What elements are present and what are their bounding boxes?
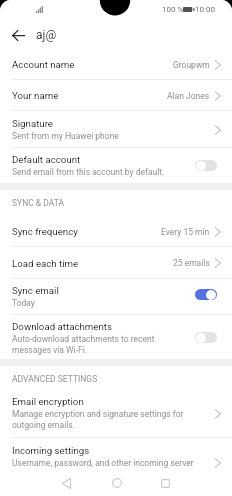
staticText: Email encryption <box>12 396 84 407</box>
staticText: Sync frequency <box>12 226 78 237</box>
staticText: Today <box>12 298 35 308</box>
button[interactable]: Sync frequency <box>0 216 232 247</box>
button[interactable]: Off <box>195 160 217 171</box>
button[interactable]: Load each time <box>0 247 232 279</box>
button[interactable]: Recent apps <box>153 470 178 496</box>
button[interactable]: Account name <box>0 49 232 80</box>
staticText: ADVANCED SETTINGS <box>12 374 98 384</box>
button[interactable]: Download attachments <box>0 315 232 359</box>
staticText: Auto-download attachments to recent mess… <box>12 334 162 355</box>
button[interactable]: On <box>195 289 217 300</box>
staticText: Username, password, and other incoming s… <box>12 458 197 479</box>
button[interactable]: Home <box>104 470 129 496</box>
staticText: Account name <box>12 59 75 70</box>
button[interactable]: Email encryption <box>0 389 232 438</box>
staticText: Default account <box>12 154 81 165</box>
staticText: Signature <box>12 118 54 129</box>
button[interactable]: Incoming settings <box>0 438 232 487</box>
staticText: SYNC & DATA <box>12 198 65 208</box>
staticText: aj@ <box>36 28 57 42</box>
staticText: 10:00 <box>195 5 215 14</box>
staticText: Alan Jones <box>167 91 210 101</box>
staticText: Send email from this account by default. <box>12 167 165 177</box>
button[interactable]: Default account <box>0 148 232 183</box>
staticText: 100 % <box>162 5 184 14</box>
staticText: Your name <box>12 90 59 101</box>
button[interactable]: Signature <box>0 111 232 148</box>
staticText: Incoming settings <box>12 445 90 456</box>
button[interactable]: Sync email <box>0 279 232 315</box>
button[interactable]: Back <box>54 470 79 496</box>
button[interactable]: Your name <box>0 80 232 111</box>
staticText: Sync email <box>12 285 59 296</box>
staticText: Sent from my Huawei phone <box>12 131 119 141</box>
staticText: Download attachments <box>12 321 112 332</box>
staticText: Load each time <box>12 258 79 269</box>
staticText: Every 15 min <box>161 227 210 237</box>
button[interactable]: Off <box>195 332 217 343</box>
staticText: Manage encryption and signature settings… <box>12 409 192 430</box>
staticText: Groupwm <box>173 60 210 70</box>
staticText: 25 emails <box>173 258 210 268</box>
button[interactable]: Back <box>6 23 30 47</box>
